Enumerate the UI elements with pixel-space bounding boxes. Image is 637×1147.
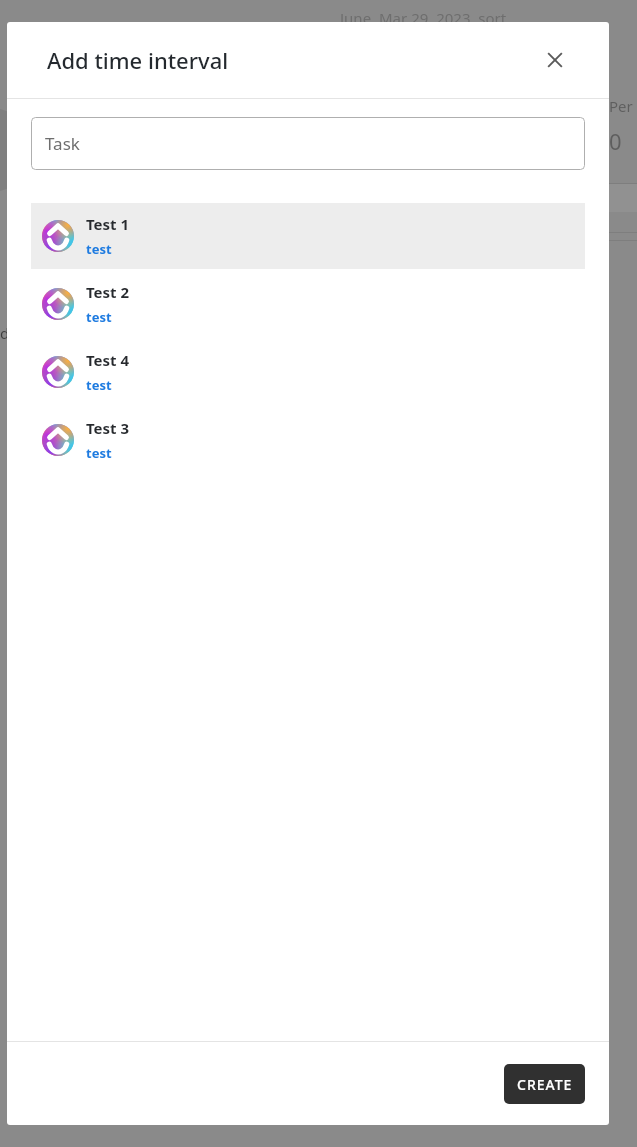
staticText: Task xyxy=(45,132,80,155)
staticText: June, Mar 29, 2023 sort xyxy=(340,8,507,22)
staticText: test xyxy=(86,308,112,326)
staticText: Test 3 xyxy=(86,418,130,438)
staticText: 0 xyxy=(609,126,622,156)
button[interactable]: Test 2 xyxy=(31,271,585,337)
button[interactable]: Test 1 xyxy=(31,203,585,269)
staticText: Test 2 xyxy=(86,282,130,302)
staticText: Per xyxy=(609,96,633,116)
button[interactable]: Test 3 xyxy=(31,407,585,473)
staticText: test xyxy=(86,376,112,394)
button[interactable]: Close xyxy=(535,40,575,80)
button[interactable]: CREATE xyxy=(504,1064,585,1104)
staticText: Add time interval xyxy=(47,45,229,75)
staticText: Test 4 xyxy=(86,350,130,370)
staticText: test xyxy=(86,240,112,258)
button[interactable]: Test 4 xyxy=(31,339,585,405)
button[interactable]: Task xyxy=(31,117,585,170)
staticText: d xyxy=(0,323,10,343)
staticText: CREATE xyxy=(517,1075,573,1094)
staticText: test xyxy=(86,444,112,462)
staticText: Test 1 xyxy=(86,214,130,234)
